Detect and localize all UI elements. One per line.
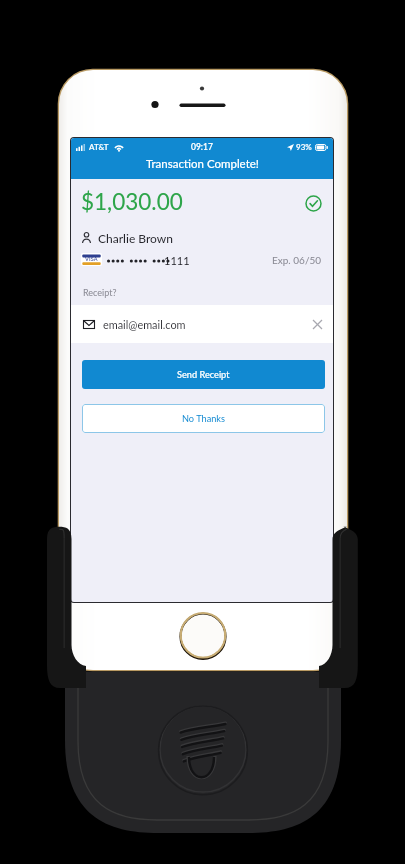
- button[interactable]: No Thanks: [82, 404, 325, 433]
- other: Clear: [313, 320, 322, 329]
- staticText: 09:17: [191, 142, 213, 152]
- staticText: Charlie Brown: [98, 231, 174, 245]
- button[interactable]: Send Receipt: [82, 360, 325, 389]
- staticText: Exp. 06/50: [272, 254, 322, 266]
- staticText: No Thanks: [182, 413, 225, 424]
- staticText: 1111: [164, 254, 190, 267]
- other: Success: [305, 195, 322, 212]
- staticText: Receipt?: [83, 287, 117, 298]
- staticText: 93%: [296, 142, 312, 152]
- button[interactable]: email@email.com: [71, 305, 333, 343]
- staticText: email@email.com: [103, 318, 186, 331]
- staticText: AT&T: [89, 142, 109, 152]
- staticText: Transaction Complete!: [146, 157, 259, 171]
- staticText: VISA: [85, 256, 98, 263]
- staticText: Send Receipt: [177, 369, 230, 380]
- staticText: $1,030.00: [81, 188, 183, 215]
